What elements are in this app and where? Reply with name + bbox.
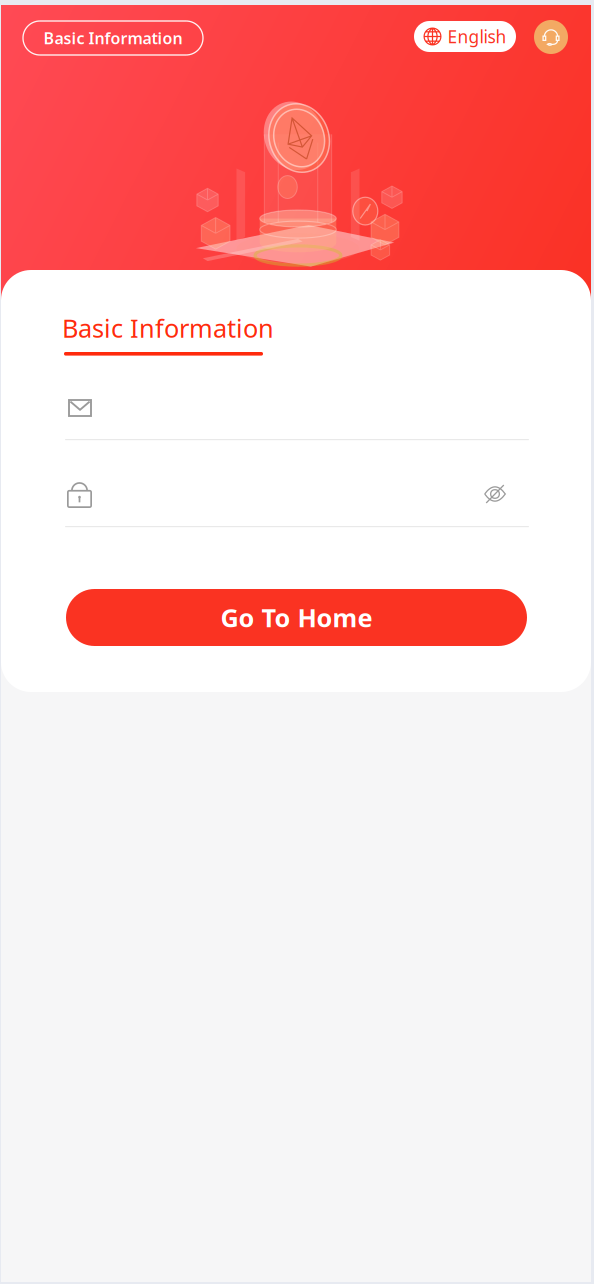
button[interactable]: Basic Information: [23, 21, 203, 55]
staticText: Basic Information: [43, 27, 182, 49]
staticText: Basic Information: [62, 311, 274, 345]
staticText: Go To Home: [220, 601, 372, 634]
button[interactable]: Go To Home: [66, 589, 527, 646]
staticText: English: [447, 25, 506, 48]
button[interactable]: Customer support: [534, 20, 568, 54]
button[interactable]: English: [414, 21, 516, 52]
